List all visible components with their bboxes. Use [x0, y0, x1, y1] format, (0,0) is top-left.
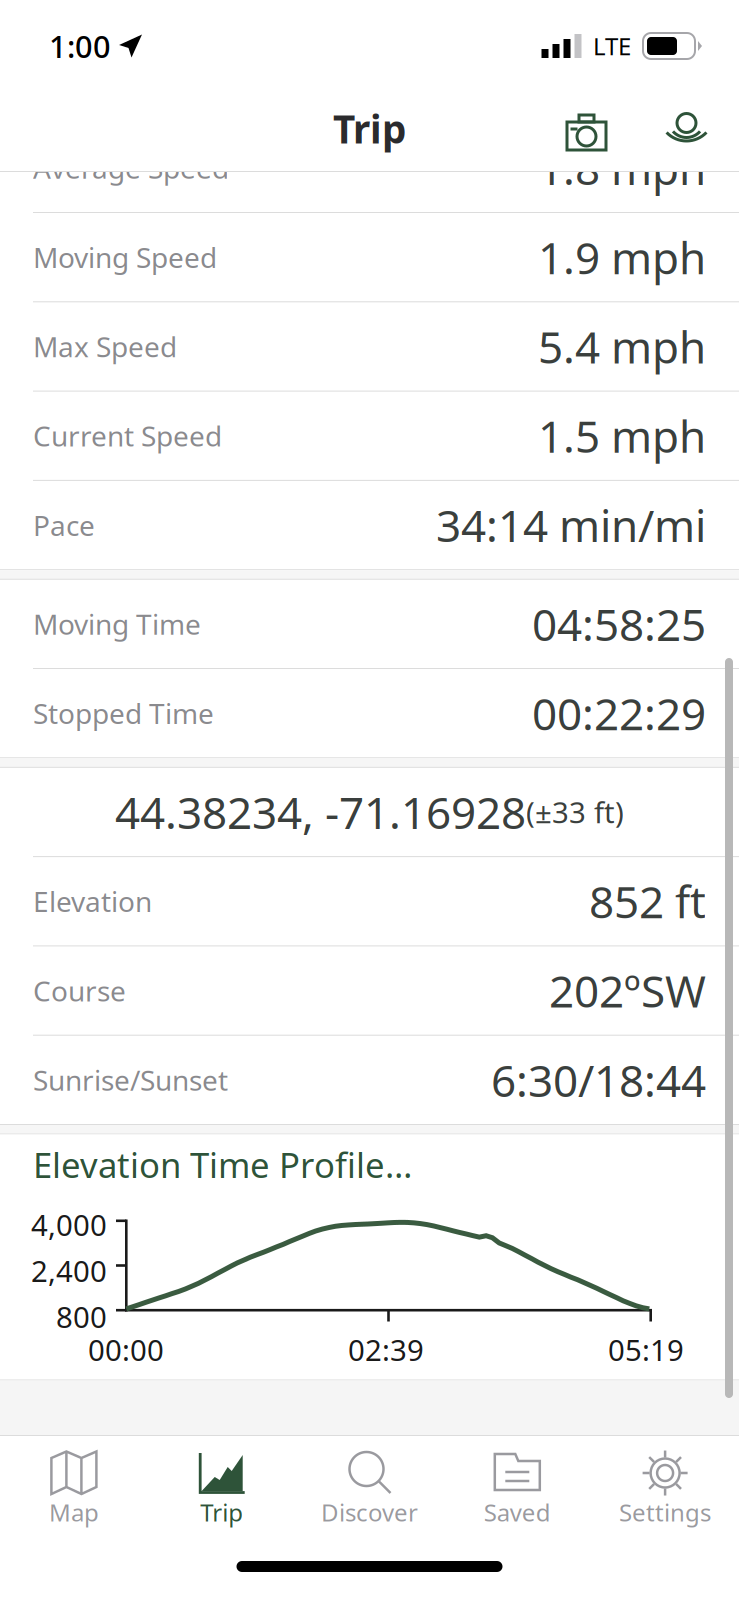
- staticText: 44.38234, -71.16928: [115, 783, 526, 841]
- button[interactable]: Camera: [534, 94, 639, 168]
- button[interactable]: Settings: [591, 1450, 739, 1540]
- staticText: Current Speed: [33, 417, 222, 454]
- staticText: 1.9 mph: [538, 228, 706, 286]
- staticText: (±33 ft): [526, 792, 624, 831]
- staticText: 00:22:29: [532, 684, 706, 742]
- staticText: LTE: [593, 30, 631, 62]
- staticText: 4,000: [31, 1205, 107, 1244]
- staticText: 852 ft: [589, 872, 706, 930]
- staticText: Trip: [333, 103, 406, 154]
- staticText: Settings: [619, 1496, 711, 1528]
- staticText: Sunrise/Sunset: [33, 1061, 228, 1098]
- staticText: 202ºSW: [549, 961, 706, 1020]
- staticText: Discover: [321, 1496, 418, 1528]
- staticText: Stopped Time: [33, 695, 214, 732]
- staticText: Moving Time: [33, 605, 201, 642]
- staticText: 34:14 min/mi: [436, 496, 706, 554]
- staticText: Saved: [484, 1496, 551, 1528]
- staticText: 05:19: [608, 1330, 684, 1369]
- staticText: Pace: [33, 506, 95, 544]
- staticText: Average Speed: [33, 149, 229, 186]
- staticText: Trip: [200, 1496, 243, 1528]
- button[interactable]: Trip: [148, 1450, 296, 1540]
- staticText: 1:00: [49, 26, 111, 66]
- staticText: 6:30/18:44: [491, 1051, 706, 1109]
- button[interactable]: Saved: [443, 1450, 591, 1540]
- staticText: 00:00: [88, 1330, 164, 1369]
- button[interactable]: Map: [0, 1450, 148, 1540]
- staticText: Elevation Time Profile…: [33, 1141, 412, 1187]
- staticText: Moving Speed: [33, 239, 217, 276]
- button[interactable]: Share live location: [639, 94, 734, 168]
- staticText: Elevation: [33, 883, 152, 920]
- staticText: 2,400: [31, 1251, 107, 1290]
- staticText: Max Speed: [33, 328, 177, 365]
- button[interactable]: Discover: [296, 1450, 443, 1540]
- staticText: 1.5 mph: [538, 406, 706, 465]
- staticText: Course: [33, 972, 126, 1009]
- staticText: 02:39: [348, 1330, 424, 1369]
- staticText: 5.4 mph: [538, 317, 706, 376]
- staticText: 800: [56, 1297, 107, 1336]
- staticText: Map: [49, 1496, 99, 1528]
- staticText: 04:58:25: [532, 595, 706, 653]
- staticText: 1.8 mph: [538, 139, 706, 197]
